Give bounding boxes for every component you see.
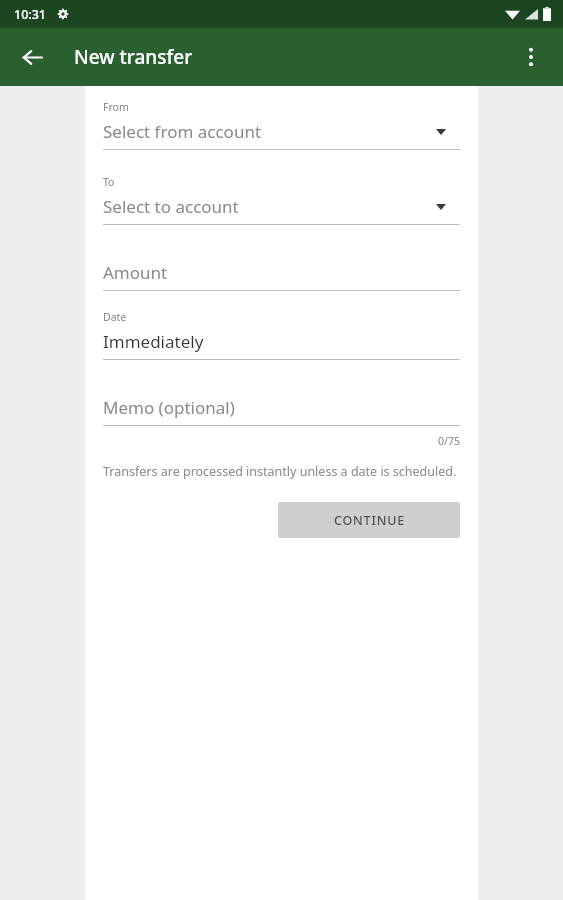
staticText: Memo (optional) (103, 396, 235, 419)
button[interactable]: To (103, 175, 460, 225)
staticText: Amount (103, 261, 168, 284)
staticText: 0/75 (103, 434, 460, 448)
button[interactable]: More options (509, 35, 553, 79)
button[interactable]: Memo (optional) (103, 396, 460, 426)
staticText: From (103, 100, 129, 114)
button[interactable]: Date (103, 310, 460, 360)
button[interactable]: CONTINUE (278, 502, 460, 538)
staticText: Date (103, 310, 127, 324)
staticText: Immediately (103, 330, 204, 353)
staticText: Transfers are processed instantly unless… (103, 463, 457, 480)
staticText: Select to account (103, 195, 239, 218)
staticText: CONTINUE (334, 512, 405, 529)
button[interactable]: Back (10, 35, 54, 79)
staticText: New transfer (74, 44, 193, 70)
staticText: 10:31 (14, 6, 47, 23)
staticText: To (103, 175, 115, 189)
button[interactable]: Amount (103, 261, 460, 291)
staticText: Select from account (103, 120, 262, 143)
button[interactable]: From (103, 100, 460, 150)
